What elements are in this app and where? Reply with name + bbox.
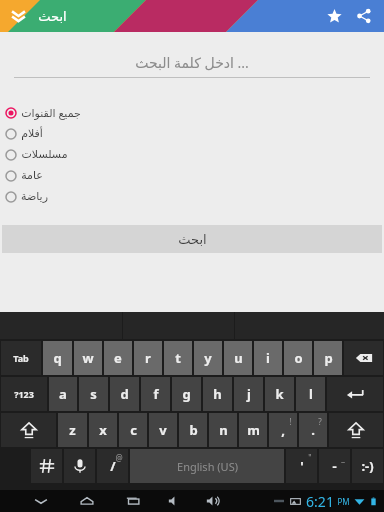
button[interactable]: Shift: [329, 413, 383, 447]
staticText: h: [213, 385, 222, 403]
staticText: .: [311, 421, 315, 439]
staticText: b: [189, 421, 198, 439]
button[interactable]: Backspace: [344, 341, 383, 375]
staticText: جميع القنوات: [21, 105, 81, 120]
staticText: m: [247, 421, 260, 439]
staticText: !: [289, 416, 292, 427]
staticText: Tab: [13, 352, 29, 364]
staticText: ابحث: [38, 9, 67, 24]
button[interactable]: :-): [352, 449, 383, 483]
staticText: /: [110, 457, 116, 475]
staticText: رياضة: [21, 190, 48, 203]
button[interactable]: رياضة: [0, 186, 384, 207]
button[interactable]: m: [239, 413, 267, 447]
button[interactable]: Shift: [1, 413, 56, 447]
button[interactable]: Recent apps: [122, 490, 144, 512]
button[interactable]: ,: [269, 413, 297, 447]
staticText: ادخل كلمة البحث ...: [135, 53, 249, 72]
staticText: English (US): [177, 459, 238, 474]
button[interactable]: v: [149, 413, 177, 447]
staticText: k: [275, 385, 284, 403]
button[interactable]: Change language: [31, 449, 62, 483]
button[interactable]: Favorite: [320, 2, 348, 30]
button[interactable]: جميع القنوات: [0, 102, 384, 123]
staticText: u: [234, 349, 243, 367]
staticText: ابحث: [178, 232, 207, 247]
button[interactable]: r: [134, 341, 162, 375]
button[interactable]: /: [97, 449, 128, 483]
staticText: y: [204, 349, 212, 367]
button[interactable]: q: [43, 341, 72, 375]
button[interactable]: ?123: [1, 377, 47, 411]
staticText: s: [90, 385, 97, 403]
button[interactable]: English (US): [130, 449, 284, 483]
button[interactable]: c: [119, 413, 147, 447]
button[interactable]: عامة: [0, 165, 384, 186]
button[interactable]: g: [172, 377, 201, 411]
button[interactable]: z: [58, 413, 87, 447]
button[interactable]: i: [254, 341, 282, 375]
staticText: عامة: [21, 169, 43, 182]
staticText: مسلسلات: [21, 148, 68, 161]
staticText: f: [153, 385, 159, 403]
staticText: e: [114, 349, 122, 367]
staticText: q: [53, 349, 62, 367]
staticText: g: [182, 385, 191, 403]
staticText: o: [294, 349, 303, 367]
button[interactable]: o: [284, 341, 312, 375]
staticText: z: [69, 421, 76, 439]
button[interactable]: Share: [350, 2, 378, 30]
button[interactable]: ابحث: [2, 225, 382, 253]
button[interactable]: n: [209, 413, 237, 447]
staticText: d: [120, 385, 129, 403]
button[interactable]: Enter: [327, 377, 383, 411]
button[interactable]: Volume down: [164, 490, 186, 512]
staticText: t: [175, 349, 181, 367]
button[interactable]: b: [179, 413, 207, 447]
button[interactable]: أفلام: [0, 123, 384, 144]
staticText: ': [300, 457, 304, 475]
staticText: x: [99, 421, 107, 439]
button[interactable]: t: [164, 341, 192, 375]
button[interactable]: Collapse: [4, 2, 32, 30]
button[interactable]: s: [79, 377, 108, 411]
button[interactable]: u: [224, 341, 252, 375]
button[interactable]: l: [296, 377, 325, 411]
button[interactable]: Back: [30, 490, 52, 512]
button[interactable]: Tab: [1, 341, 41, 375]
staticText: ?: [318, 416, 322, 427]
button[interactable]: j: [234, 377, 263, 411]
staticText: ?123: [14, 388, 34, 400]
button[interactable]: Volume up: [202, 490, 224, 512]
staticText: _: [341, 452, 345, 463]
staticText: أفلام: [21, 127, 43, 140]
button[interactable]: ادخل كلمة البحث ...: [14, 50, 370, 78]
button[interactable]: -: [319, 449, 350, 483]
staticText: c: [130, 421, 137, 439]
button[interactable]: e: [104, 341, 132, 375]
staticText: :-): [361, 457, 374, 475]
button[interactable]: h: [203, 377, 232, 411]
button[interactable]: Home: [76, 490, 98, 512]
button[interactable]: k: [265, 377, 294, 411]
staticText: PM: [337, 496, 350, 507]
button[interactable]: a: [49, 377, 77, 411]
button[interactable]: f: [141, 377, 170, 411]
button[interactable]: d: [110, 377, 139, 411]
button[interactable]: ': [286, 449, 317, 483]
staticText: l: [309, 385, 313, 403]
staticText: p: [324, 349, 333, 367]
staticText: ,: [281, 421, 285, 439]
staticText: j: [247, 385, 251, 403]
button[interactable]: مسلسلات: [0, 144, 384, 165]
staticText: 6:21: [306, 492, 334, 511]
button[interactable]: p: [314, 341, 342, 375]
button[interactable]: Voice input: [64, 449, 95, 483]
button[interactable]: w: [74, 341, 102, 375]
staticText: r: [145, 349, 151, 367]
staticText: @: [115, 452, 123, 463]
button[interactable]: .: [299, 413, 327, 447]
button[interactable]: y: [194, 341, 222, 375]
staticText: w: [82, 349, 94, 367]
button[interactable]: x: [89, 413, 117, 447]
